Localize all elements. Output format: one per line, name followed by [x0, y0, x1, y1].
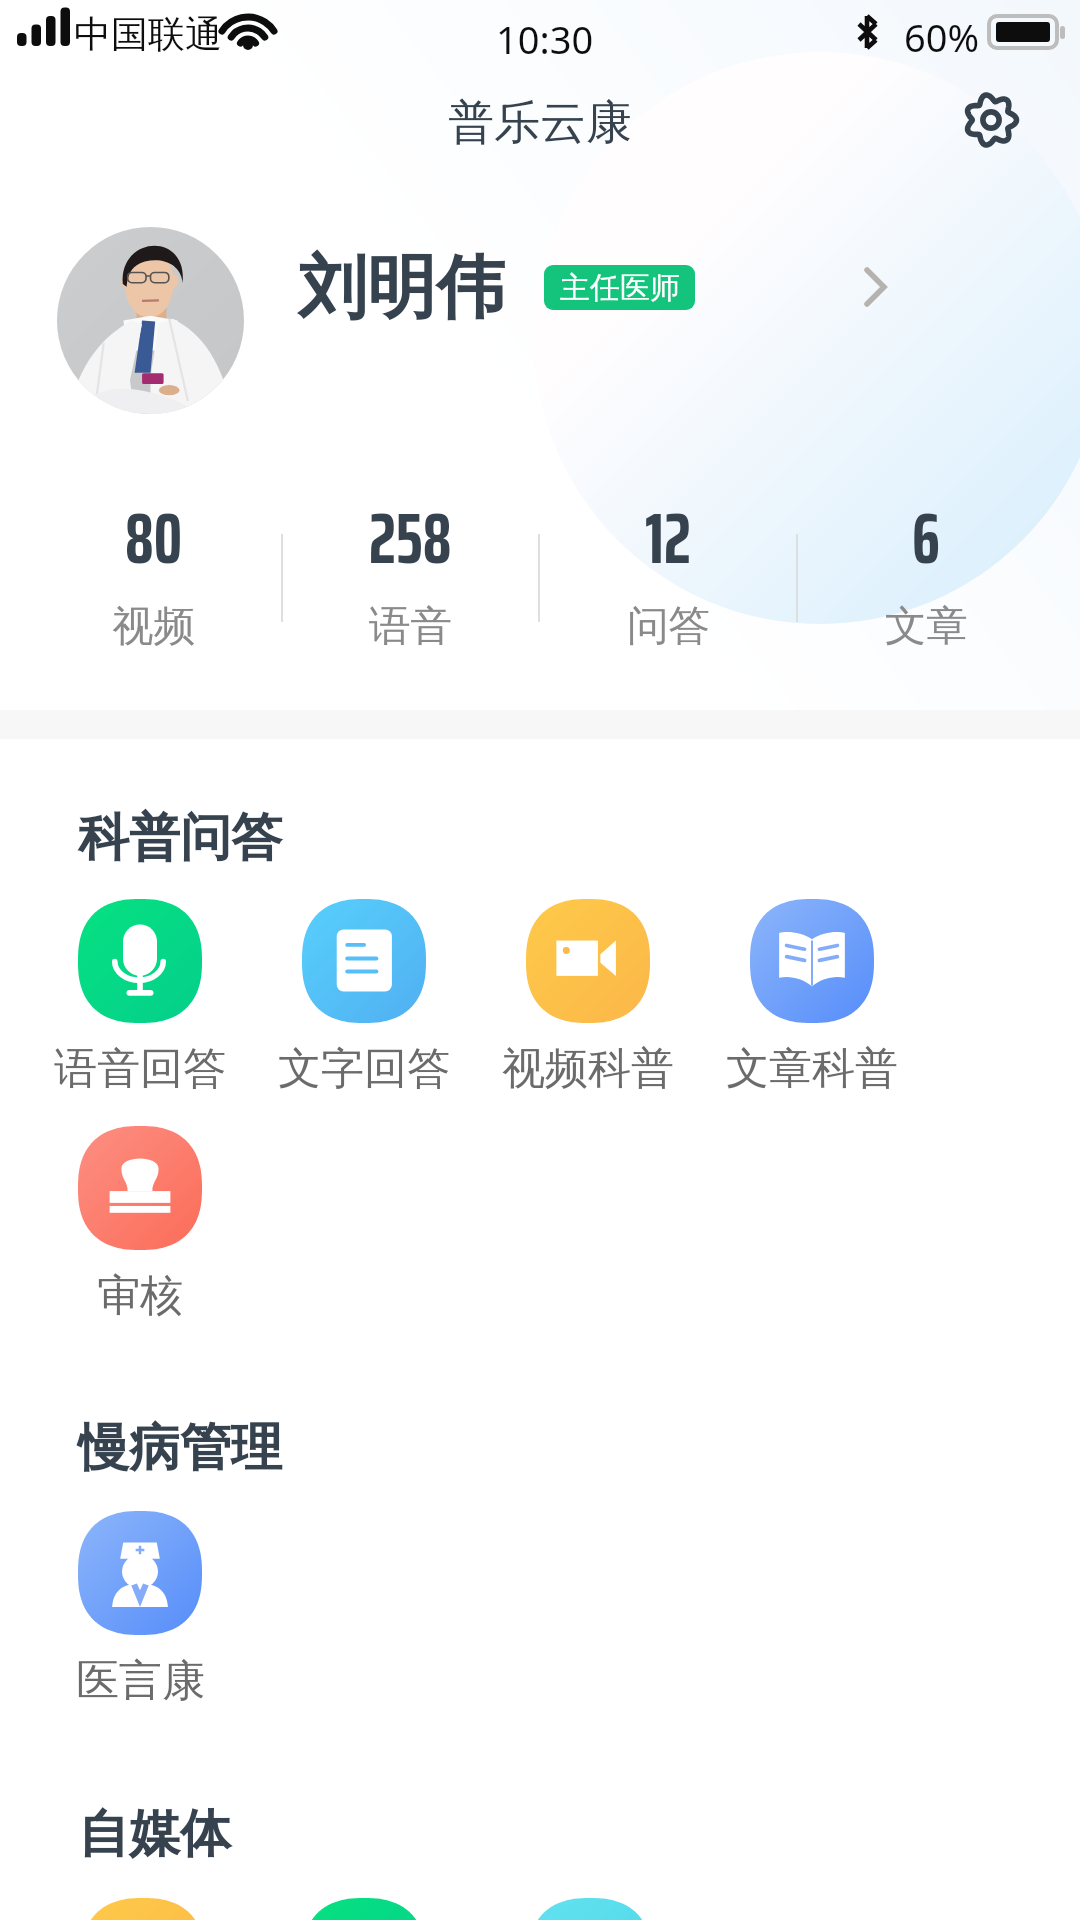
staticText: 视频科普	[502, 1042, 674, 1096]
staticText: 文字回答	[278, 1042, 450, 1096]
staticText: 60%	[904, 11, 980, 63]
button[interactable]: 80	[25, 477, 282, 657]
button[interactable]: media	[528, 1898, 652, 1920]
button[interactable]: 视频科普	[526, 899, 650, 1023]
staticText: 问答	[627, 600, 710, 652]
staticText: 科普问答	[78, 806, 282, 870]
staticText: 语音	[369, 600, 452, 652]
staticText: 258	[369, 482, 452, 594]
button[interactable]: 258	[282, 477, 539, 657]
button[interactable]: Settings	[955, 84, 1027, 156]
staticText: 自媒体	[78, 1802, 231, 1866]
staticText: 医言康	[76, 1654, 205, 1708]
staticText: 普乐云康	[448, 94, 632, 152]
button[interactable]: media	[302, 1898, 426, 1920]
button[interactable]: 文章科普	[750, 899, 874, 1023]
staticText: 10:30	[496, 13, 594, 65]
staticText: 文章	[885, 600, 968, 652]
button[interactable]: 医言康	[78, 1511, 202, 1635]
button[interactable]: 6	[797, 477, 1055, 657]
staticText: 刘明伟	[298, 245, 505, 332]
staticText: 6	[912, 482, 940, 594]
staticText: 文章科普	[726, 1042, 898, 1096]
staticText: 主任医师	[560, 269, 680, 307]
staticText: 视频	[112, 600, 195, 652]
staticText: 中国联通	[74, 11, 222, 58]
button[interactable]: 语音回答	[78, 899, 202, 1023]
button[interactable]: 文字回答	[302, 899, 426, 1023]
staticText: 慢病管理	[78, 1416, 282, 1480]
button[interactable]: 刘明伟	[0, 188, 1080, 488]
staticText: 语音回答	[54, 1042, 226, 1096]
button[interactable]: media	[81, 1898, 205, 1920]
staticText: 审核	[97, 1269, 183, 1323]
staticText: 12	[645, 482, 691, 594]
button[interactable]: 审核	[78, 1126, 202, 1250]
button[interactable]: 12	[539, 477, 797, 657]
staticText: 80	[125, 482, 183, 594]
